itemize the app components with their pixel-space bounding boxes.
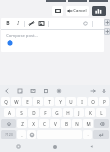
button[interactable]: Previous: [3, 87, 10, 94]
button[interactable]: Insert image: [38, 20, 45, 27]
button[interactable]: M: [83, 119, 93, 128]
button[interactable]: R: [33, 97, 43, 106]
staticText: K: [89, 110, 92, 116]
staticText: I: [81, 99, 83, 105]
button[interactable]: Backspace: [94, 119, 109, 128]
button[interactable]: Clipboard: [42, 87, 49, 94]
button[interactable]: Expand: [104, 19, 110, 26]
button[interactable]: Symbols: [1, 130, 16, 139]
button[interactable]: Insert link: [28, 20, 35, 27]
staticText: Q: [4, 99, 8, 105]
staticText: H: [66, 110, 70, 116]
staticText: P: [103, 99, 106, 105]
staticText: R: [37, 99, 40, 105]
button[interactable]: F: [40, 108, 51, 117]
staticText: Z: [21, 121, 24, 127]
button[interactable]: K: [85, 108, 95, 117]
button[interactable]: Enter: [93, 130, 109, 139]
button[interactable]: Settings: [55, 87, 62, 94]
staticText: M: [86, 121, 91, 127]
button[interactable]: Z: [17, 119, 27, 128]
staticText: D: [32, 110, 36, 116]
button[interactable]: Back: [73, 141, 110, 152]
staticText: I: [17, 20, 19, 27]
button[interactable]: Italic: [14, 20, 21, 27]
button[interactable]: Emoji: [27, 130, 36, 139]
button[interactable]: Comma: [17, 130, 26, 139]
button[interactable]: J: [74, 108, 84, 117]
button[interactable]: P: [99, 97, 109, 106]
button[interactable]: Stickers: [16, 87, 23, 94]
button[interactable]: Next: [89, 87, 96, 94]
button[interactable]: X: [28, 119, 38, 128]
button[interactable]: More options: [104, 28, 110, 35]
staticText: N: [75, 121, 79, 127]
button[interactable]: I: [77, 97, 87, 106]
button[interactable]: Recents: [0, 141, 36, 152]
staticText: ,: [21, 132, 23, 138]
button[interactable]: W: [11, 97, 21, 106]
staticText: A: [8, 110, 11, 116]
staticText: L: [100, 110, 103, 116]
button[interactable]: H: [63, 108, 73, 117]
button[interactable]: Insert: [52, 6, 63, 16]
staticText: Y: [59, 99, 62, 105]
button[interactable]: Y: [55, 97, 65, 106]
button[interactable]: Bold: [4, 20, 11, 27]
button[interactable]: Shift: [1, 119, 16, 128]
button[interactable]: E: [22, 97, 32, 106]
staticText: E: [26, 99, 29, 105]
staticText: V: [54, 121, 57, 127]
button[interactable]: L: [96, 108, 106, 117]
staticText: F: [44, 110, 47, 116]
staticText: W: [14, 99, 19, 105]
staticText: X: [32, 121, 35, 127]
button[interactable]: V: [50, 119, 60, 128]
button[interactable]: U: [66, 97, 76, 106]
button[interactable]: Q: [1, 97, 10, 106]
staticText: B: [65, 121, 68, 127]
button[interactable]: T: [44, 97, 54, 106]
staticText: G: [55, 110, 59, 116]
button[interactable]: N: [72, 119, 82, 128]
button[interactable]: O: [88, 97, 98, 106]
staticText: J: [78, 110, 80, 116]
button[interactable]: C: [39, 119, 49, 128]
staticText: S: [20, 110, 23, 116]
staticText: Compose post...: [6, 33, 38, 39]
staticText: ?123: [5, 132, 13, 137]
staticText: U: [69, 99, 73, 105]
button[interactable]: Voice input: [100, 87, 107, 94]
button[interactable]: Insert chart: [92, 6, 106, 16]
button[interactable]: Undo: [82, 20, 89, 27]
button[interactable]: GIF: [29, 87, 36, 94]
staticText: B: [6, 20, 10, 27]
button[interactable]: S: [16, 108, 27, 117]
button[interactable]: Compose post...: [1, 30, 104, 52]
button[interactable]: B: [61, 119, 71, 128]
staticText: T: [48, 99, 51, 105]
staticText: .: [87, 132, 89, 138]
button[interactable]: D: [28, 108, 39, 117]
staticText: C: [43, 121, 46, 127]
button[interactable]: Home: [36, 141, 73, 152]
button[interactable]: G: [52, 108, 62, 117]
staticText: Cancel: [73, 8, 87, 14]
staticText: O: [91, 99, 95, 105]
button[interactable]: A: [4, 108, 15, 117]
button[interactable]: Cancel: [66, 6, 89, 16]
